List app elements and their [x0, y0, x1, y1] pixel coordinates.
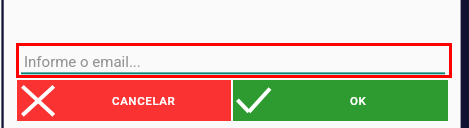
button[interactable]: Informe o email — [16, 43, 452, 78]
staticText: OK — [350, 94, 367, 107]
button[interactable]: CANCELAR — [17, 80, 231, 121]
button[interactable]: OK — [233, 80, 448, 121]
staticText: Informe o email... — [24, 53, 141, 71]
staticText: CANCELAR — [112, 94, 176, 107]
